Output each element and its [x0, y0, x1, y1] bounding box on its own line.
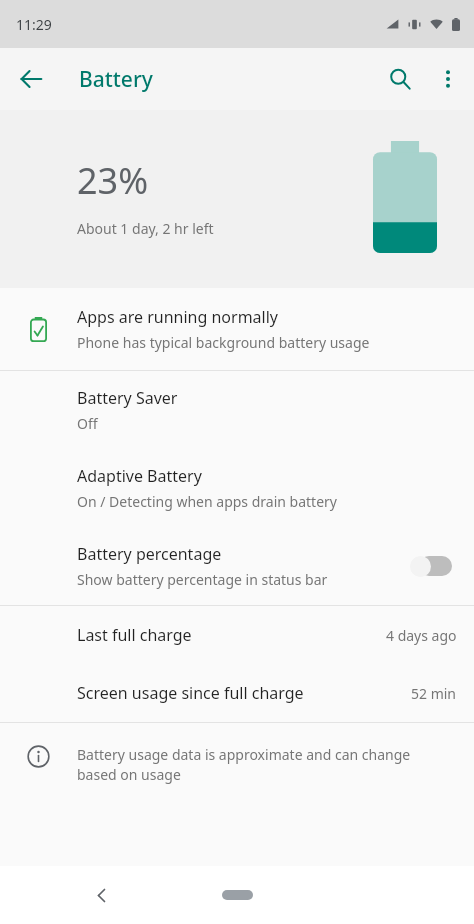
- staticText: On / Detecting when apps drain battery: [77, 492, 337, 511]
- staticText: 52 min: [411, 684, 457, 703]
- staticText: Screen usage since full charge: [77, 682, 411, 704]
- button[interactable]: Apps are running normally: [0, 288, 474, 370]
- button[interactable]: Back: [77, 871, 125, 919]
- button[interactable]: Screen usage since full charge: [0, 664, 474, 722]
- button[interactable]: Last full charge: [0, 606, 474, 664]
- button[interactable]: More options: [424, 55, 472, 103]
- staticText: Battery Saver: [77, 387, 178, 409]
- button[interactable]: Battery Saver: [0, 371, 474, 449]
- staticText: 11:29: [16, 15, 52, 34]
- staticText: 23%: [77, 156, 149, 205]
- staticText: Off: [77, 414, 98, 433]
- staticText: Last full charge: [77, 624, 386, 646]
- button[interactable]: Battery percentage toggle: [410, 553, 452, 579]
- button[interactable]: Search: [376, 55, 424, 103]
- button[interactable]: Back: [7, 55, 55, 103]
- button[interactable]: Adaptive Battery: [0, 449, 474, 527]
- button[interactable]: Home: [209, 883, 265, 907]
- button[interactable]: Battery percentage: [0, 527, 474, 605]
- staticText: Show battery percentage in status bar: [77, 570, 328, 589]
- staticText: Battery usage data is approximate and ca…: [77, 745, 426, 785]
- staticText: Phone has typical background battery usa…: [77, 333, 370, 352]
- staticText: Adaptive Battery: [77, 465, 202, 487]
- staticText: About 1 day, 2 hr left: [77, 219, 214, 238]
- staticText: Apps are running normally: [77, 306, 278, 328]
- staticText: 4 days ago: [386, 626, 457, 645]
- staticText: Battery: [79, 65, 153, 94]
- staticText: Battery percentage: [77, 543, 222, 565]
